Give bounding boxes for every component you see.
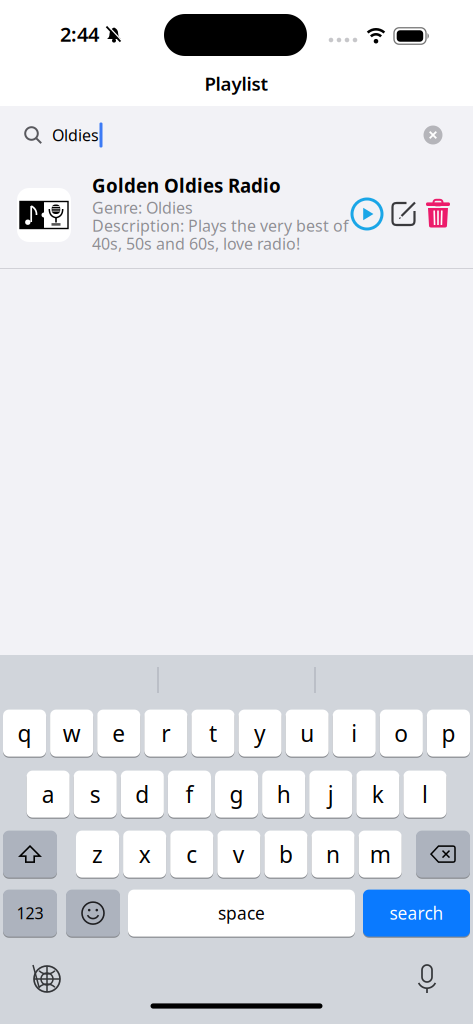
button[interactable]: Golden Oldies Radio [0,165,340,268]
staticText: z [92,839,103,869]
staticText: u [300,718,314,748]
staticText: e [112,718,125,748]
button[interactable] [388,199,418,229]
staticText: v [233,839,245,869]
button[interactable]: a [27,770,70,818]
staticText: t [209,718,217,748]
staticText: q [18,718,32,748]
button[interactable]: b [264,830,307,878]
button[interactable]: n [311,830,355,878]
staticText: k [372,779,384,809]
staticText: d [135,779,149,809]
staticText: Genre: Oldies [92,197,193,218]
staticText: x [139,839,151,869]
staticText: Oldies [52,124,99,146]
button[interactable]: d [121,770,164,818]
staticText: l [422,779,428,809]
button[interactable]: Oldies [0,107,412,163]
staticText: i [351,718,357,748]
button[interactable]: z [76,830,119,878]
button[interactable]: k [356,770,399,818]
button[interactable]: l [403,770,446,818]
button[interactable]: u [286,709,329,757]
staticText: h [277,779,291,809]
staticText: g [230,779,244,809]
button[interactable] [3,830,57,878]
staticText: y [254,718,266,748]
button[interactable] [416,830,470,878]
button[interactable]: j [309,770,352,818]
staticText: s [90,779,101,809]
button[interactable]: g [215,770,258,818]
button[interactable]: 123 [3,889,57,937]
button[interactable]: x [123,830,166,878]
button[interactable]: h [262,770,305,818]
button[interactable]: e [97,709,140,757]
staticText: 2:44 [60,21,99,47]
staticText: j [328,779,334,809]
staticText: 123 [16,902,43,924]
button[interactable]: p [427,709,470,757]
button[interactable] [418,120,448,150]
staticText: a [42,779,55,809]
button[interactable] [426,199,450,228]
button[interactable]: v [217,830,260,878]
staticText: m [370,839,391,869]
staticText: w [63,718,81,748]
button[interactable]: s [74,770,117,818]
button[interactable]: y [238,709,282,757]
button[interactable] [25,957,69,1001]
staticText: 40s, 50s and 60s, love radio! [92,233,300,254]
staticText: f [185,779,193,809]
staticText: n [326,839,340,869]
button[interactable] [405,957,449,1001]
button[interactable]: space [128,889,355,937]
staticText: p [441,718,455,748]
staticText: Golden Oldies Radio [92,173,281,198]
button[interactable]: i [333,709,376,757]
button[interactable]: f [168,770,211,818]
button[interactable]: o [380,709,423,757]
button[interactable] [350,197,384,231]
staticText: search [389,902,443,925]
button[interactable] [66,889,120,937]
staticText: space [218,902,265,925]
staticText: r [161,718,170,748]
button[interactable]: c [170,830,213,878]
staticText: Playlist [204,71,268,96]
button[interactable]: search [363,889,470,937]
button[interactable]: r [144,709,187,757]
button[interactable]: m [359,830,402,878]
button[interactable]: q [3,709,46,757]
staticText: b [279,839,293,869]
staticText: Description: Plays the very best of [92,215,349,236]
button[interactable]: w [50,709,93,757]
button[interactable]: t [191,709,234,757]
staticText: o [394,718,408,748]
staticText: c [186,839,197,869]
